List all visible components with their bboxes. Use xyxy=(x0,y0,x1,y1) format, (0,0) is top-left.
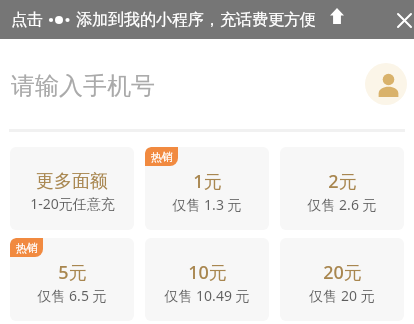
staticText: 添加到我的小程序，充话费更方便 xyxy=(76,10,316,30)
staticText: 2元 xyxy=(328,169,357,194)
button[interactable]: 5元 xyxy=(10,238,134,321)
staticText: 20元 xyxy=(323,260,362,285)
staticText: 请输入手机号 xyxy=(11,71,155,101)
staticText: 5元 xyxy=(58,260,87,285)
staticText: 仅售 10.49 元 xyxy=(164,286,250,305)
staticText: 仅售 20 元 xyxy=(309,286,375,305)
staticText: 仅售 2.6 元 xyxy=(307,195,377,214)
staticText: 10元 xyxy=(188,260,227,285)
staticText: 仅售 6.5 元 xyxy=(37,286,107,305)
staticText: 1元 xyxy=(193,169,222,194)
button[interactable]: Close xyxy=(394,10,414,30)
button[interactable]: Add to my mini programs xyxy=(323,0,350,39)
staticText: 仅售 1.3 元 xyxy=(172,195,242,214)
button[interactable]: Account xyxy=(365,63,407,105)
staticText: 1-20元任意充 xyxy=(30,194,115,213)
button[interactable]: 10元 xyxy=(145,238,269,321)
staticText: 更多面额 xyxy=(36,170,108,193)
staticText: 热销 xyxy=(16,241,38,255)
button[interactable]: 20元 xyxy=(280,238,404,321)
staticText: 点击 xyxy=(11,10,43,30)
button[interactable]: 更多面额 xyxy=(10,147,134,230)
staticText: 热销 xyxy=(151,150,173,164)
button[interactable]: 2元 xyxy=(280,147,404,230)
button[interactable]: 1元 xyxy=(145,147,269,230)
